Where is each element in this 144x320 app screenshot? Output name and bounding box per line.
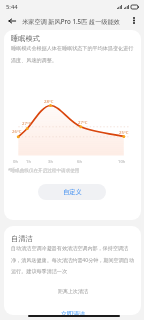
button[interactable]: Back (5, 14, 19, 28)
staticText: *睡眠曲线仅在开启过程中请求使用 (8, 167, 80, 173)
staticText: 自清洁 (11, 234, 33, 243)
staticText: 10h (118, 159, 126, 165)
staticText: 0h (13, 159, 18, 165)
button[interactable]: 距离上次清洁 (50, 285, 95, 296)
staticText: 立即清洁 (61, 310, 85, 315)
staticText: 27°C (22, 120, 32, 126)
staticText: 28°C (44, 98, 54, 104)
button[interactable]: 立即清洁 (54, 309, 92, 315)
staticText: 自动清洁空调冷凝器有效清洁空调内部，保持空调洁净，清风送健康。每次清洁约需40分… (11, 245, 137, 275)
button[interactable]: More options (128, 14, 140, 26)
staticText: 睡眠模式会根据人体在睡眠状态下的平均体温变化进行温度、风速的调整。 (11, 45, 137, 63)
staticText: 6h (77, 159, 82, 165)
staticText: 25°C (119, 129, 129, 135)
staticText: 自定义 (63, 188, 82, 196)
staticText: 5:44 (6, 3, 18, 11)
staticText: 距离上次清洁 (58, 288, 88, 294)
button[interactable]: 自定义 (38, 184, 106, 200)
staticText: 27°C (78, 119, 88, 125)
staticText: 26°C (12, 128, 22, 134)
staticText: 3h (48, 159, 53, 165)
staticText: 睡眠模式 (11, 34, 40, 43)
staticText: 1h (26, 159, 31, 165)
staticText: 米家空调 新风Pro 1.5匹 超一级能效 (22, 17, 120, 25)
